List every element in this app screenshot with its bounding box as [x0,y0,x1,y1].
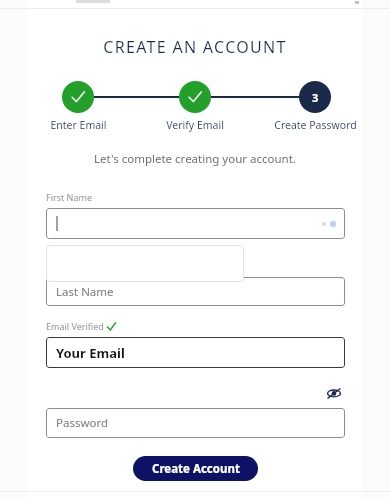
staticText: CREATE AN ACCOUNT [103,36,287,58]
staticText: 3 [312,90,319,105]
staticText: First Name [46,191,92,203]
button[interactable]: Password [46,408,345,438]
button[interactable] [179,81,211,113]
button[interactable] [46,208,345,239]
staticText: Verify Email [166,118,224,132]
staticText: Last Name [56,284,114,300]
staticText: Create Password [274,118,357,132]
staticText: Create Account [152,461,240,477]
staticText: Email Verified [46,320,104,332]
button[interactable]: Show password [322,383,346,403]
staticText: Password [56,415,109,431]
button[interactable]: Create Account [133,456,258,481]
button[interactable]: Last Name [46,277,345,306]
staticText: Enter Email [50,118,107,132]
staticText: Your Email [56,344,125,362]
button[interactable] [62,81,94,113]
button[interactable]: Your Email [46,337,345,368]
staticText: Let's complete creating your account. [94,151,296,167]
button[interactable]: 3 [299,81,331,113]
